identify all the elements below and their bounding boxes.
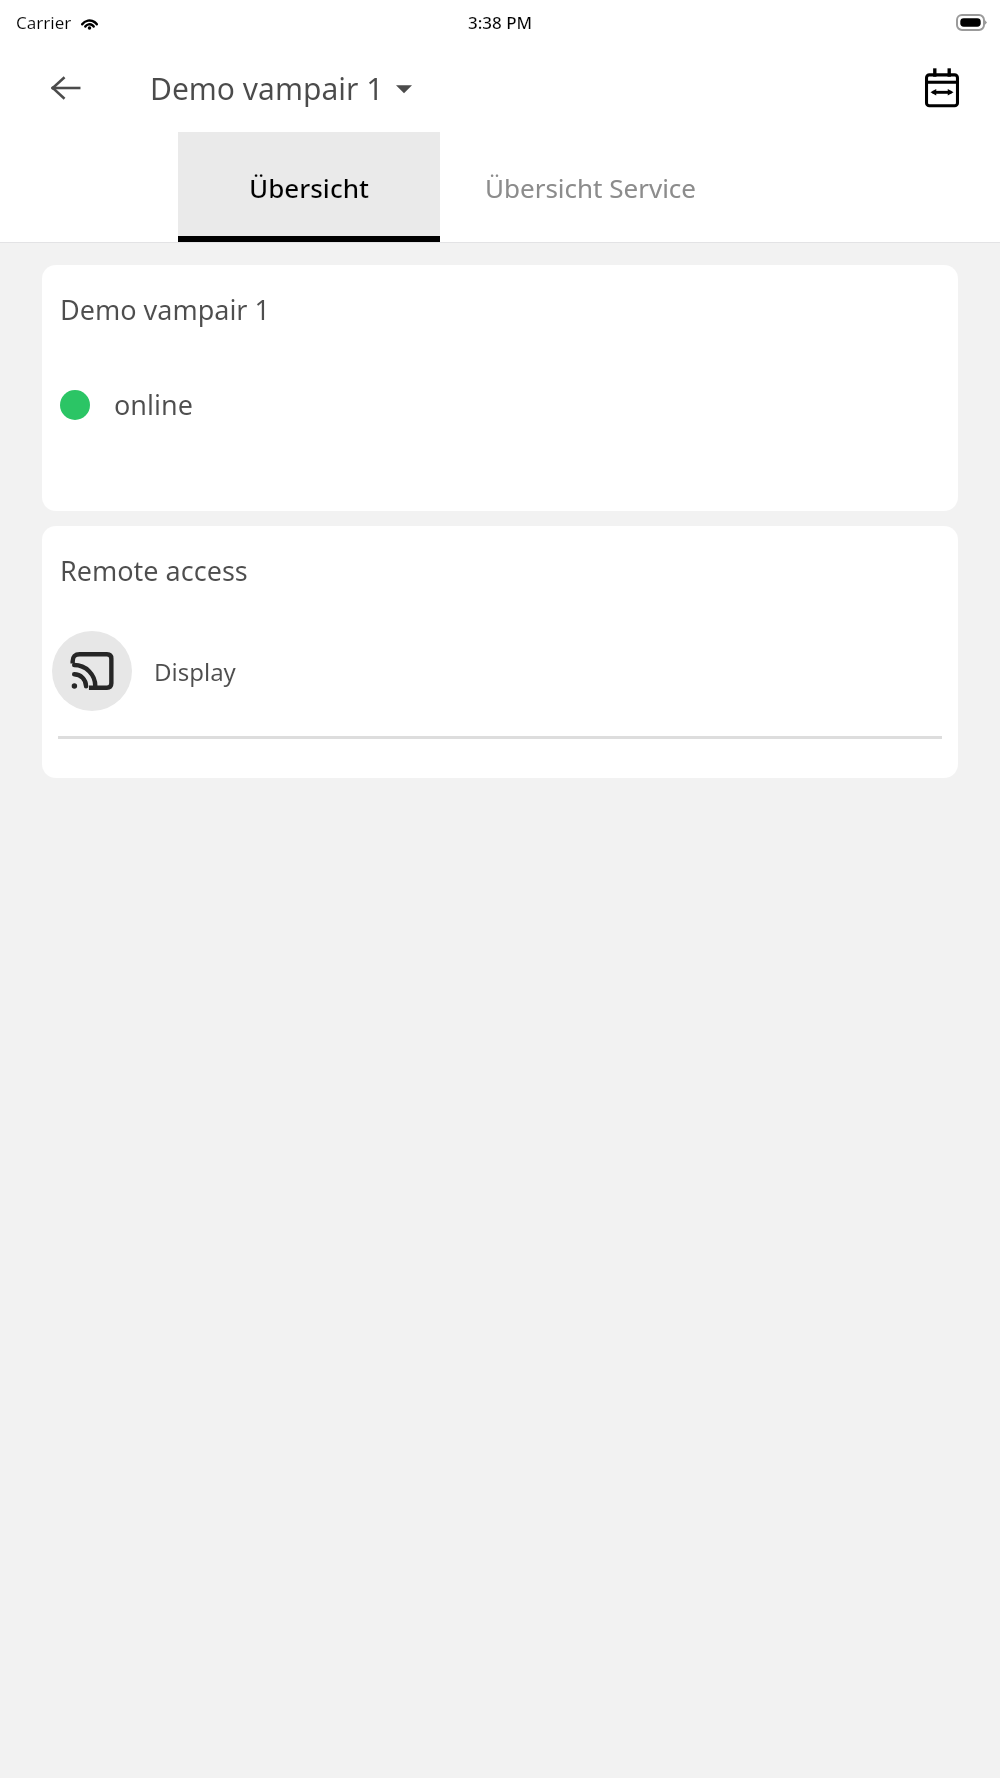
button[interactable]: Demo vampair 1 <box>150 68 412 109</box>
staticText: Demo vampair 1 <box>150 68 384 109</box>
staticText: 3:38 PM <box>468 11 533 34</box>
staticText: Remote access <box>60 552 248 589</box>
button[interactable]: Übersicht <box>178 132 440 242</box>
button[interactable]: Date range <box>914 60 970 116</box>
staticText: online <box>114 386 193 423</box>
button[interactable]: Übersicht Service <box>440 132 740 242</box>
button[interactable]: Display <box>42 631 958 711</box>
staticText: Carrier <box>16 11 72 34</box>
staticText: Übersicht Service <box>485 170 696 205</box>
staticText: Übersicht <box>249 170 369 205</box>
button[interactable]: Back <box>40 62 92 114</box>
staticText: Demo vampair 1 <box>60 291 270 328</box>
button[interactable]: Remote access <box>42 526 958 778</box>
button[interactable]: Demo vampair 1 <box>42 265 958 511</box>
staticText: Display <box>154 655 236 688</box>
